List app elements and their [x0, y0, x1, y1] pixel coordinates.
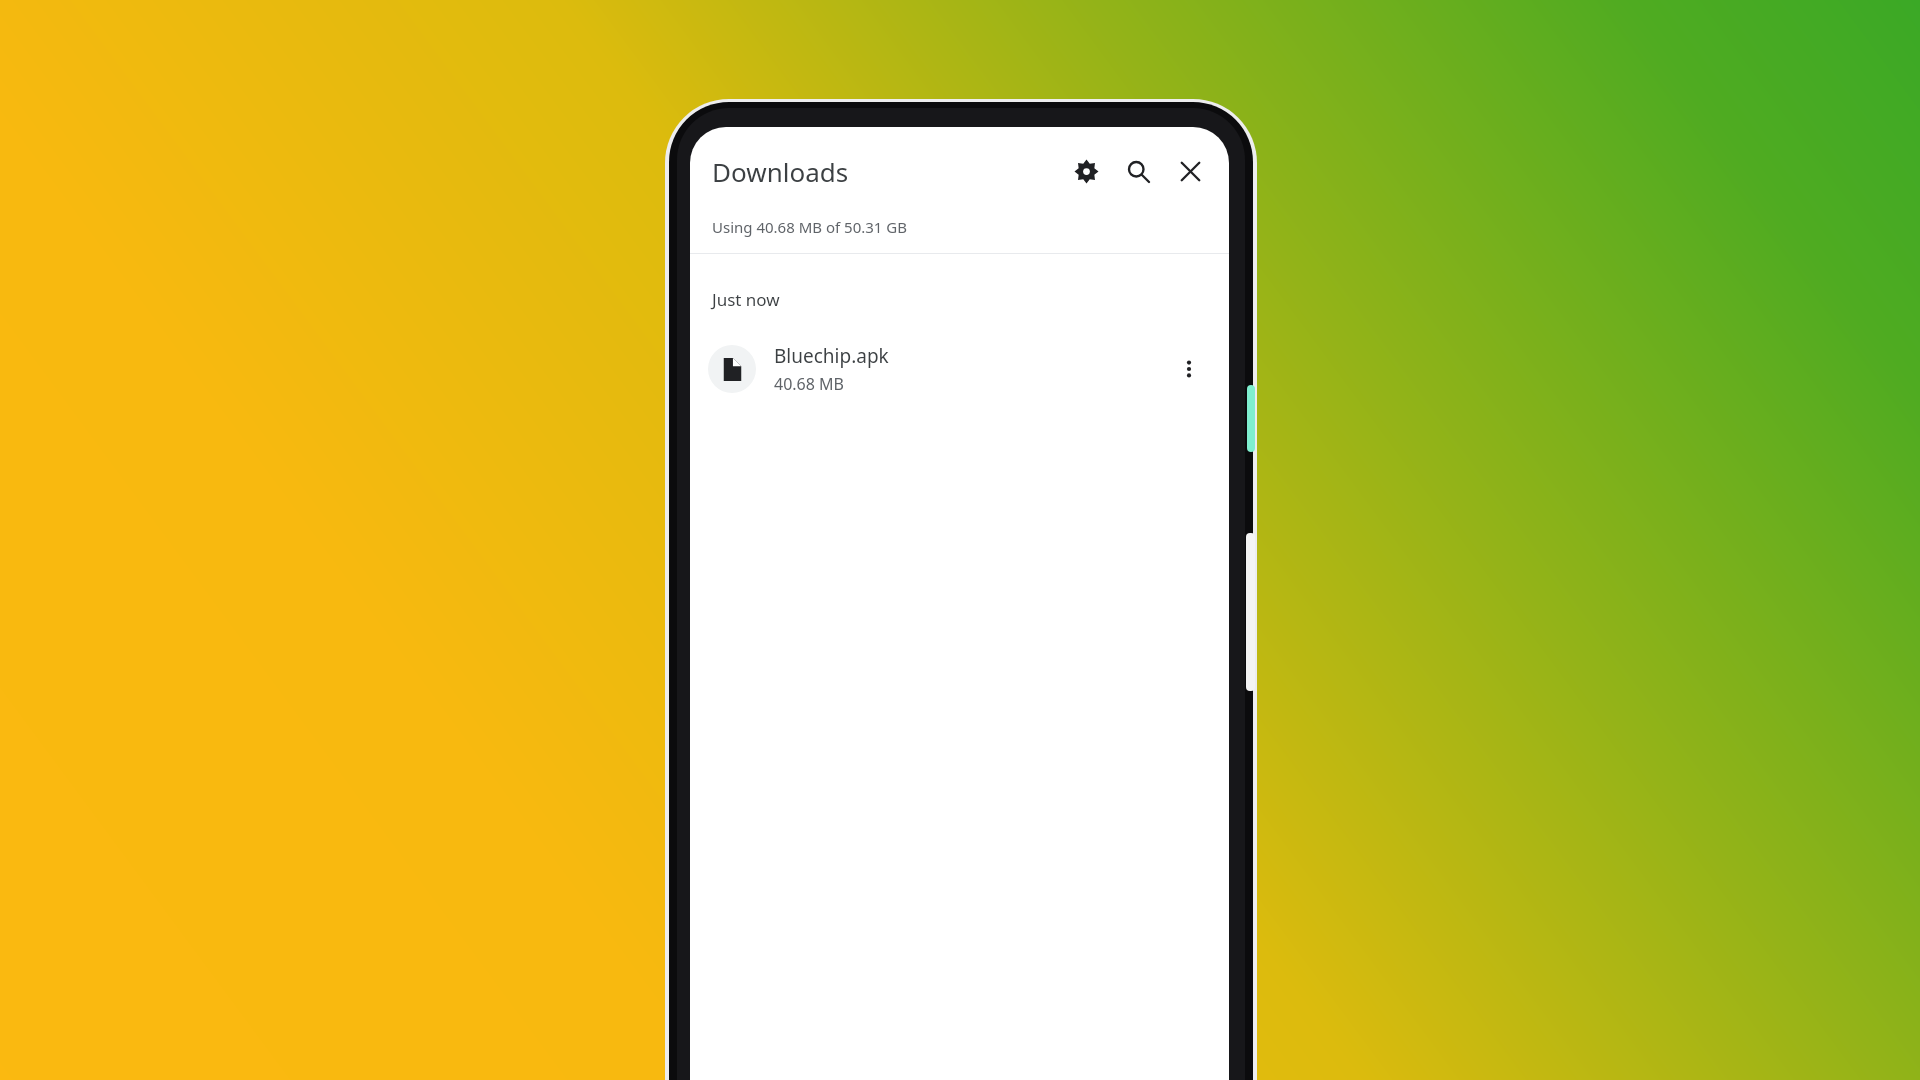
button[interactable]: More options	[1165, 345, 1213, 393]
button[interactable]: Volume buttons	[1246, 533, 1255, 691]
button[interactable]: Settings	[1065, 150, 1107, 192]
button[interactable]: Power button	[1247, 385, 1255, 452]
staticText: Just now	[712, 288, 780, 311]
button[interactable]: Bluechip.apk	[690, 333, 1229, 405]
staticText: Downloads	[712, 154, 849, 189]
button[interactable]: Close	[1169, 150, 1211, 192]
staticText: Using 40.68 MB of 50.31 GB	[712, 217, 907, 237]
button[interactable]: Search	[1117, 150, 1159, 192]
staticText: 40.68 MB	[774, 373, 844, 395]
staticText: Bluechip.apk	[774, 343, 889, 369]
